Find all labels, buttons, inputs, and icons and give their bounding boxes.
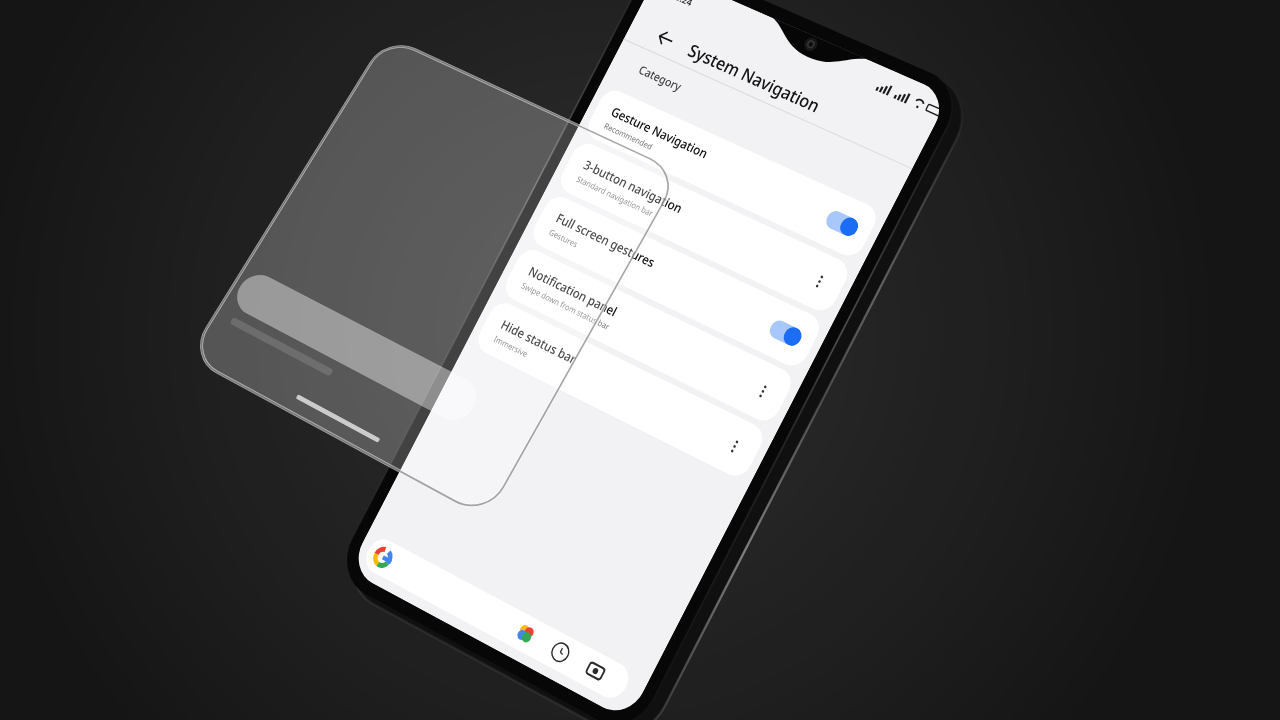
button[interactable]: Toggle [823,208,861,239]
staticText: Swipe down from status bar [519,280,612,333]
button[interactable]: More options [805,267,834,296]
staticText: Gesture Navigation [608,103,711,162]
staticText: Category [636,61,685,94]
button[interactable]: Full screen gestures [528,192,825,371]
staticText: System Navigation [684,38,825,118]
button[interactable]: Clock [548,639,573,665]
staticText: Recommended [602,120,655,153]
button[interactable]: Photos [513,620,538,647]
staticText: 3-button navigation [581,156,686,217]
button[interactable]: More options [749,377,777,406]
button[interactable]: Toggle [767,318,805,349]
staticText: Full screen gestures [553,209,658,271]
staticText: Hide status bar [498,316,580,368]
button[interactable]: Notification panel [500,245,796,426]
staticText: Standard navigation bar [574,173,656,219]
staticText: Notification panel [526,262,621,320]
staticText: 10:24 [669,0,695,9]
button[interactable]: Back [647,20,684,56]
button[interactable]: Camera [583,658,608,684]
staticText: Gestures [547,226,580,250]
button[interactable]: 3-button navigation [555,139,853,316]
button[interactable]: Hide status bar [473,298,768,481]
button[interactable]: Gesture Navigation [583,86,881,260]
staticText: Immersive [492,333,530,360]
button[interactable]: More options [720,432,749,461]
button[interactable]: Photos [360,534,634,704]
